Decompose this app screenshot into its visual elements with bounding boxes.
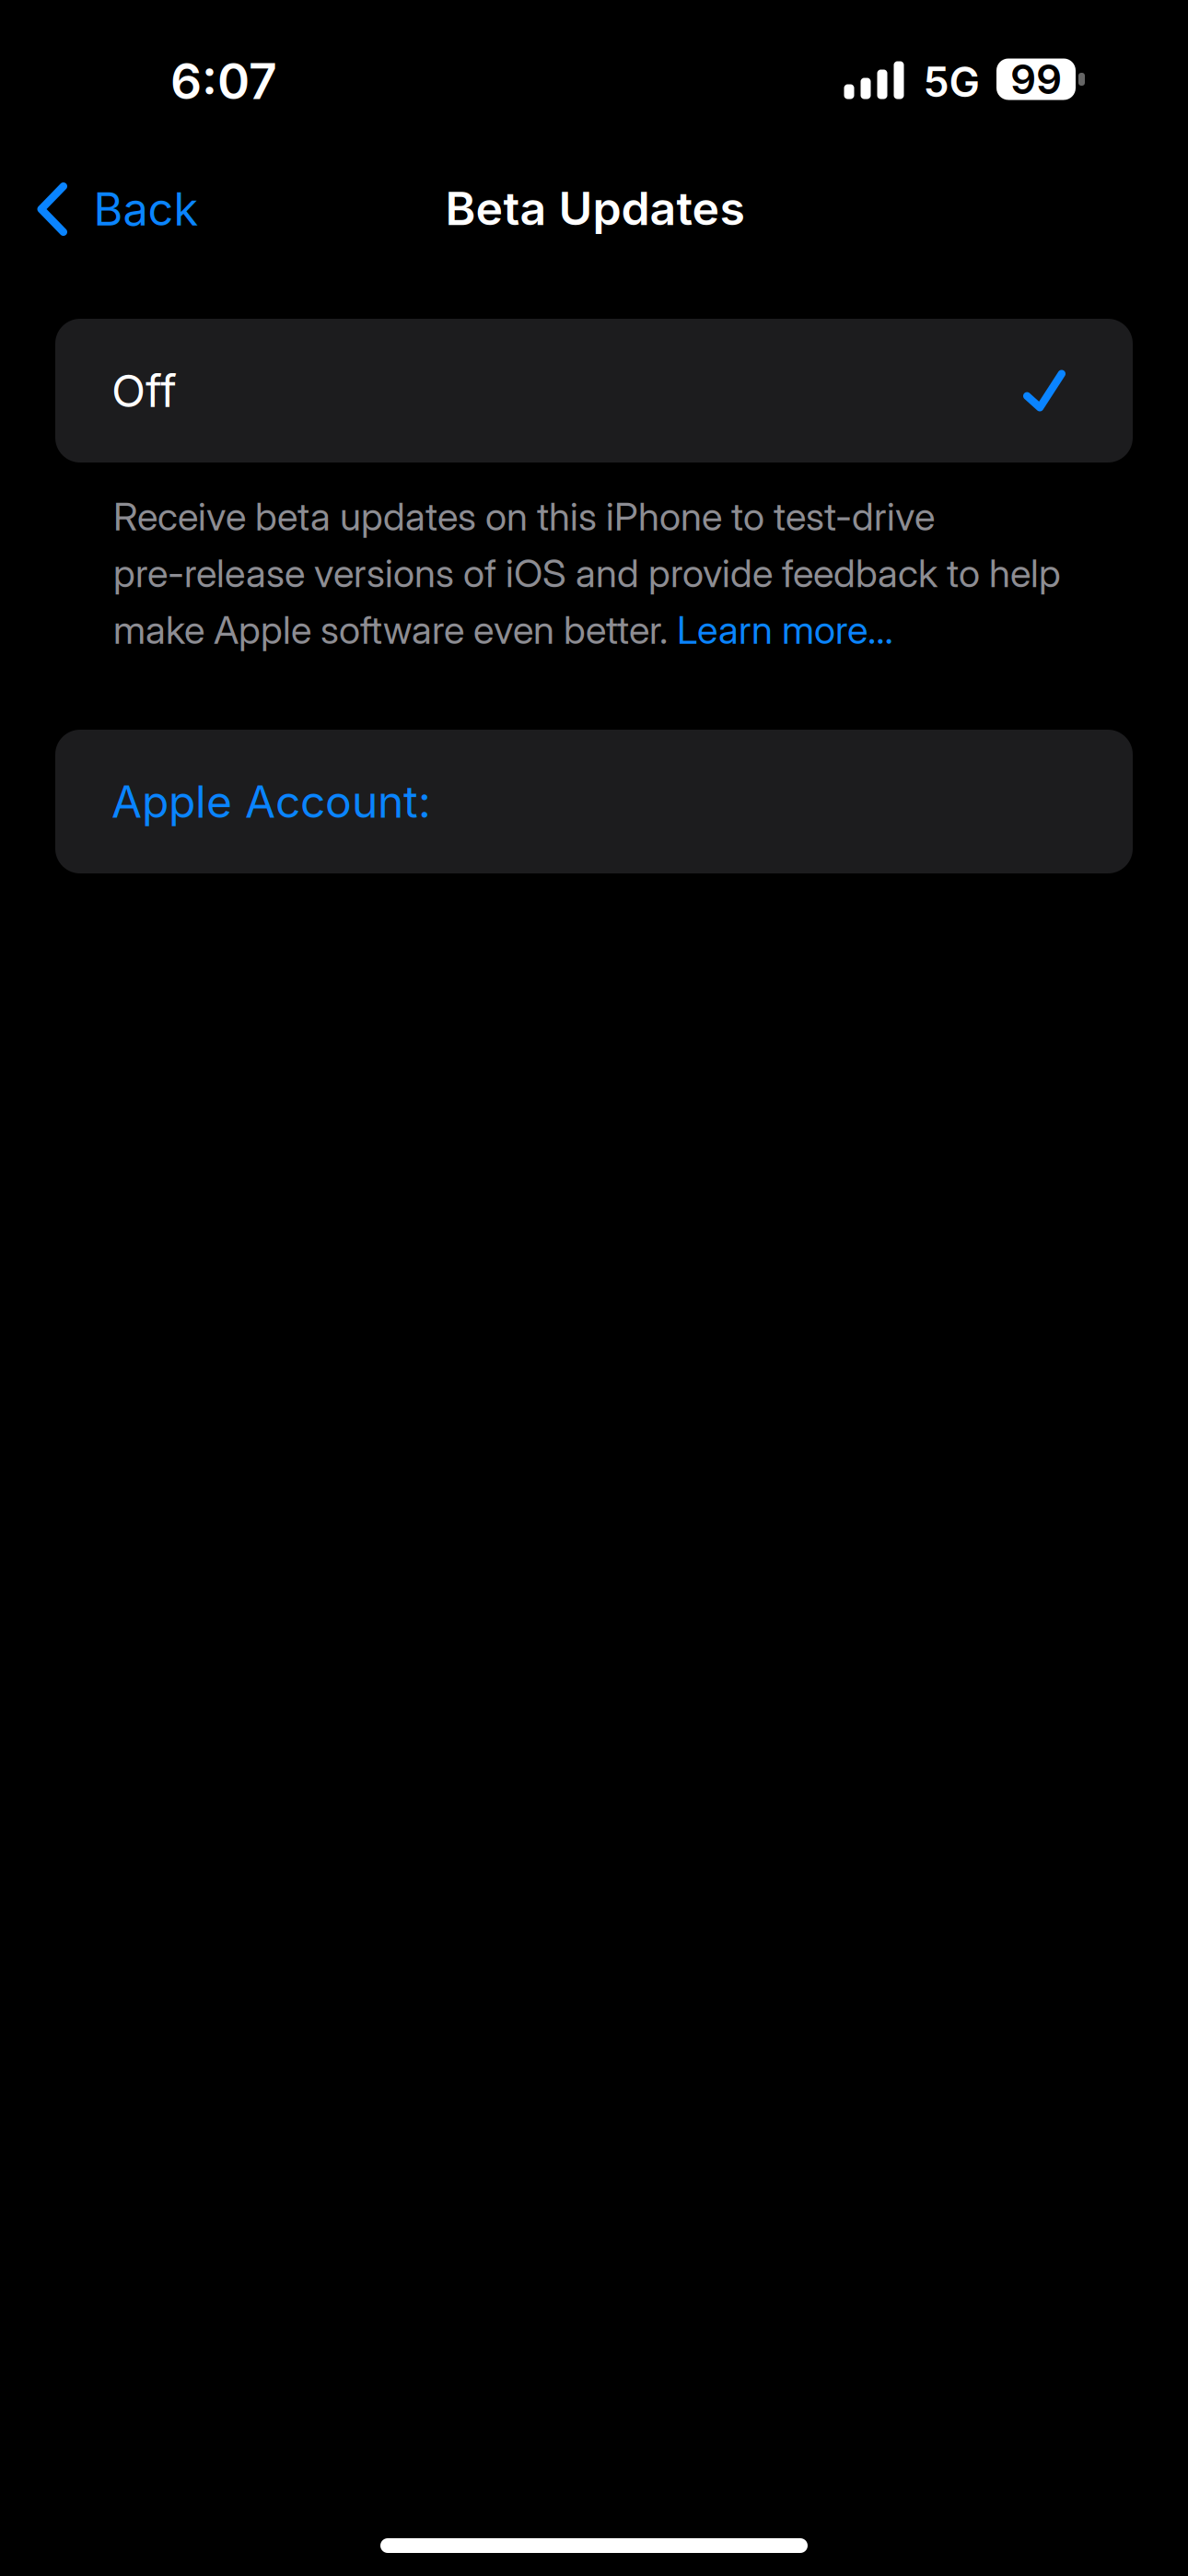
staticText: Beta Updates — [445, 180, 745, 236]
staticText: 5G — [923, 57, 979, 107]
staticText: pre-release versions of iOS and provide … — [113, 550, 1061, 596]
button[interactable]: Off — [55, 319, 1133, 463]
button[interactable]: Back — [0, 164, 222, 255]
staticText: 99 — [1010, 55, 1062, 104]
staticText: 6:07 — [170, 51, 277, 111]
staticText: make Apple software even better. — [113, 606, 677, 653]
staticText: Off — [111, 364, 177, 418]
button[interactable]: Learn more… — [677, 606, 893, 653]
staticText: Back — [93, 182, 198, 236]
staticText: Learn more… — [677, 606, 893, 653]
staticText: Receive beta updates on this iPhone to t… — [113, 493, 935, 540]
staticText: Apple Account: — [111, 775, 431, 828]
button[interactable]: Apple Account: — [55, 730, 1133, 873]
